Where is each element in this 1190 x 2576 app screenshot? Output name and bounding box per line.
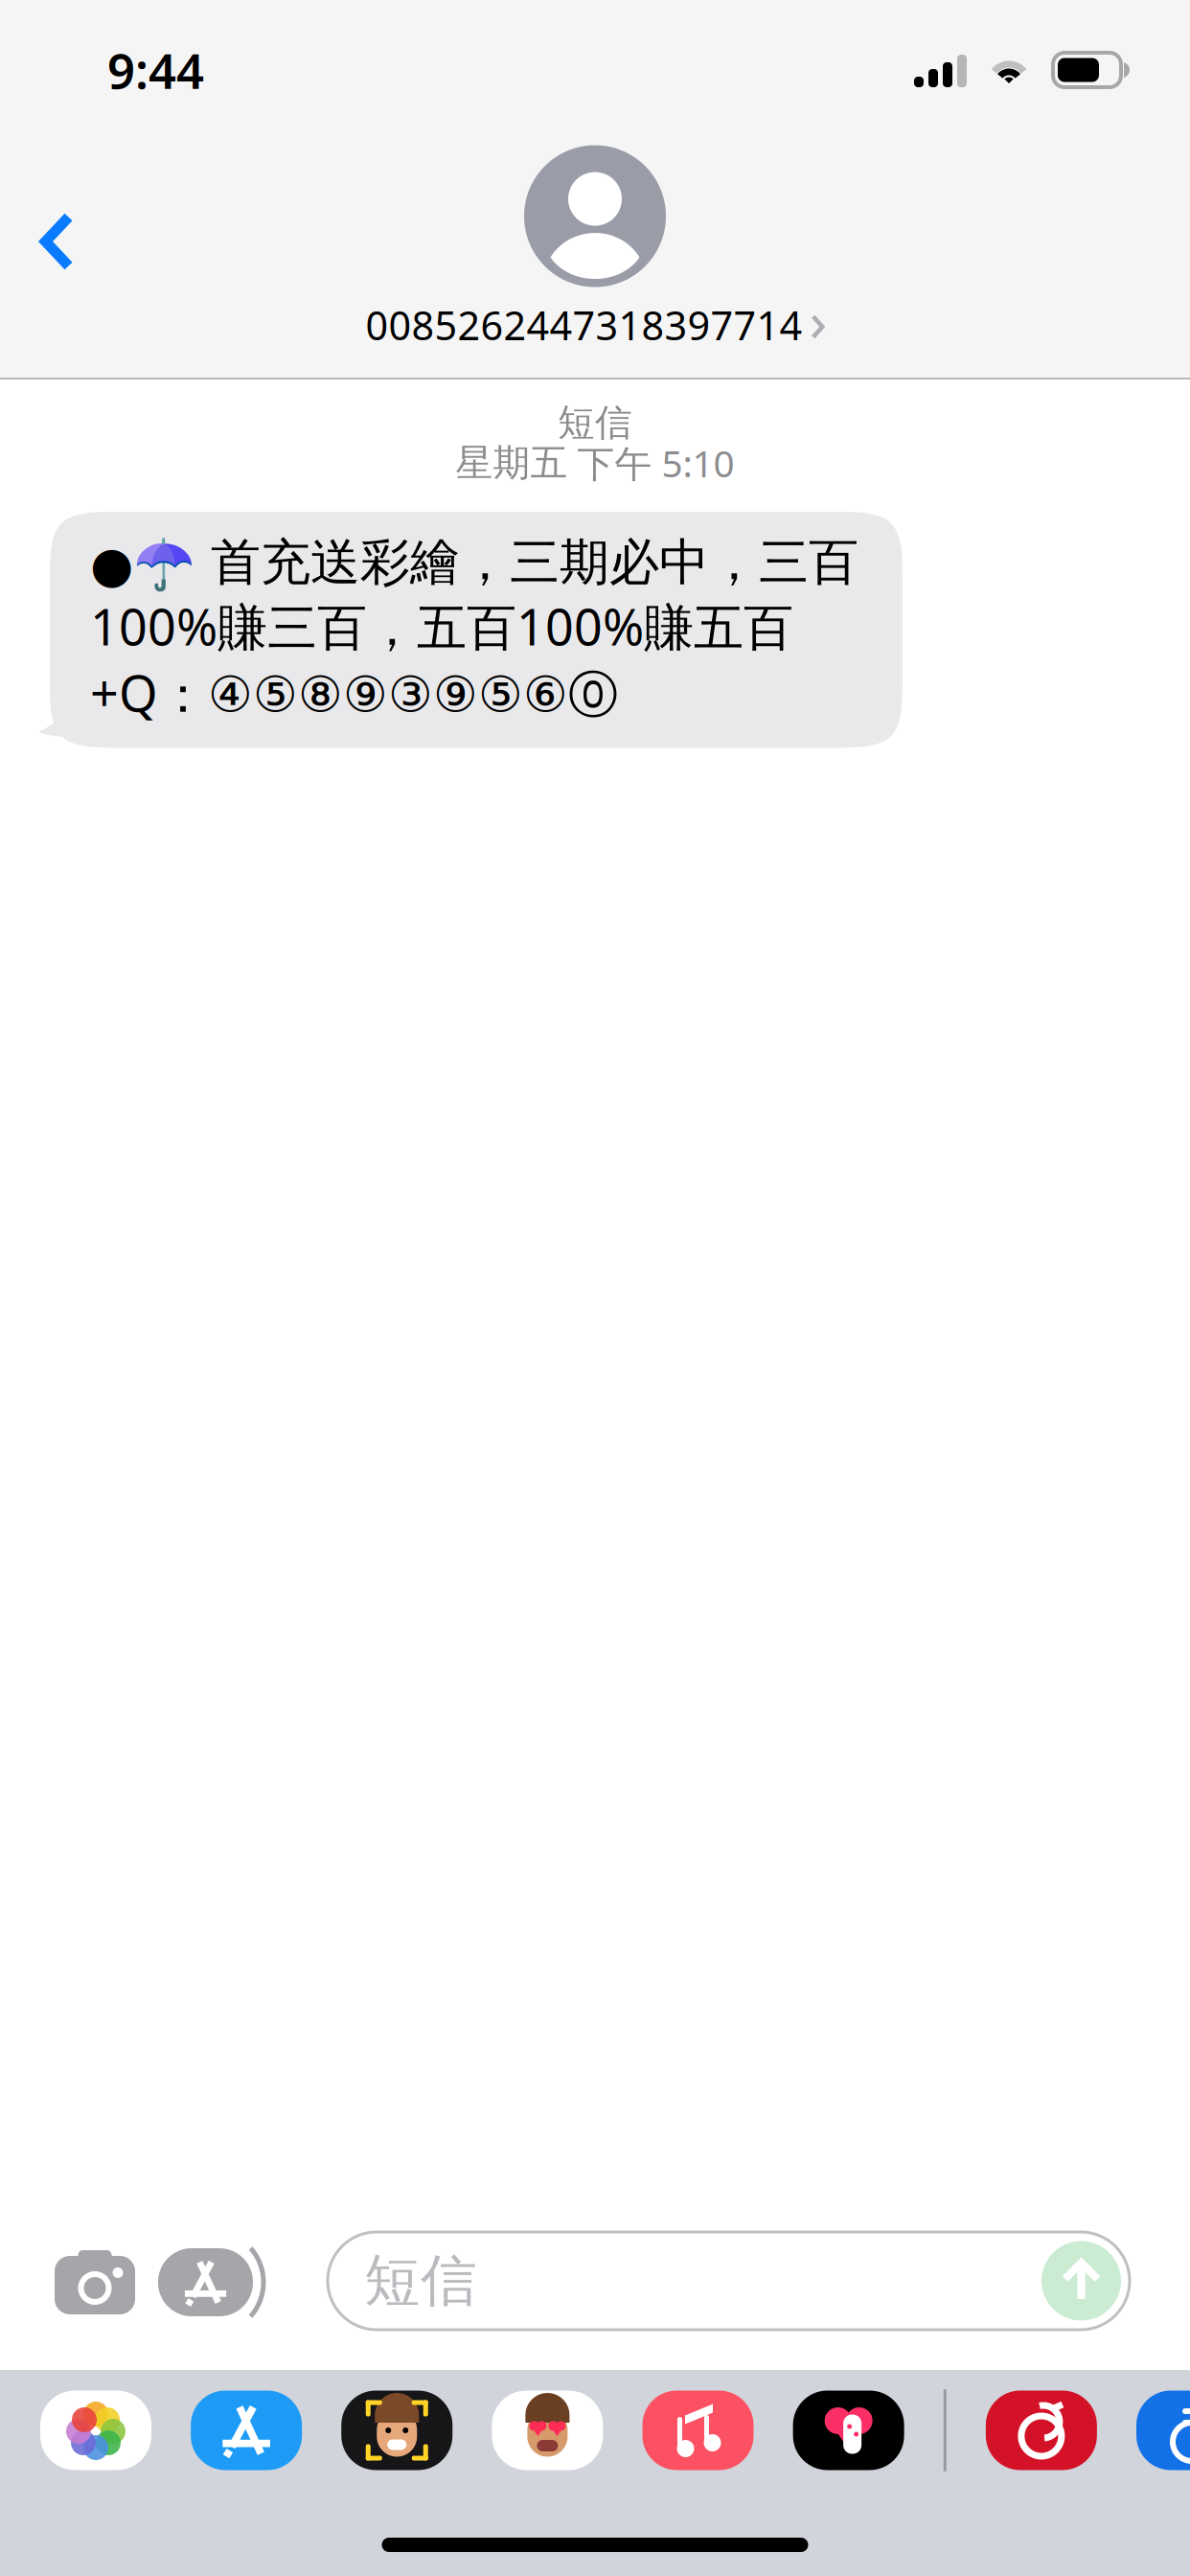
- staticText: 9:44: [107, 38, 204, 102]
- button[interactable]: Photos: [40, 2391, 151, 2470]
- staticText: 下午 5:10: [577, 438, 734, 487]
- staticText: 短信: [558, 400, 632, 445]
- button[interactable]: App Store: [191, 2391, 302, 2470]
- button[interactable]: Apps: [158, 2248, 266, 2342]
- button[interactable]: Back: [0, 183, 106, 300]
- button[interactable]: NetEase Music: [986, 2391, 1097, 2470]
- button[interactable]: More apps: [1136, 2391, 1190, 2470]
- staticText: 星期五: [456, 440, 568, 486]
- staticText: 0085262447318397714: [366, 299, 802, 351]
- button[interactable]: Memoji: [341, 2391, 452, 2470]
- button[interactable]: Camera: [0, 2250, 158, 2342]
- button[interactable]: Memoji Stickers: [492, 2391, 603, 2470]
- button[interactable]: Send: [1041, 2241, 1121, 2321]
- staticText: ●☂️ 首充送彩繪，三期必中，三百 100%賺三百，五百100%賺五百 +Q：④…: [90, 532, 858, 726]
- button[interactable]: Music: [642, 2391, 754, 2470]
- staticText: 短信: [364, 2246, 477, 2315]
- button[interactable]: Fitness: [793, 2391, 904, 2470]
